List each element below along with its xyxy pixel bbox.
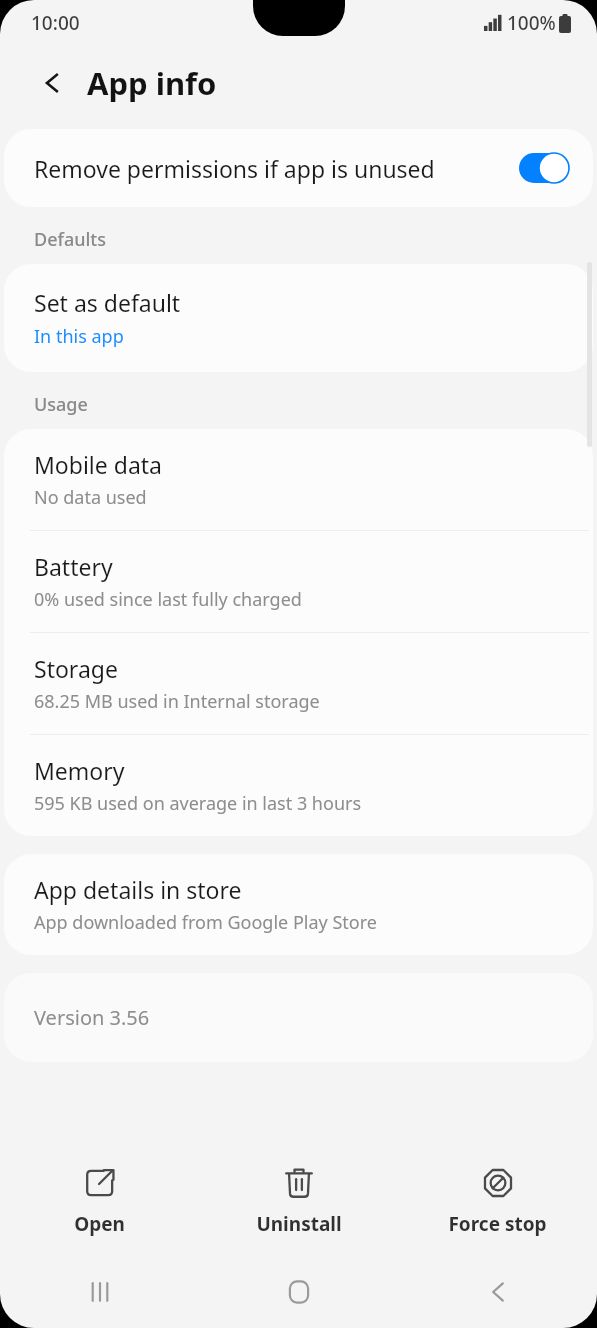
staticText: Battery [34, 551, 113, 582]
button[interactable]: Recent apps [0, 1256, 199, 1328]
button[interactable]: Storage [4, 633, 593, 734]
staticText: Memory [34, 755, 125, 786]
staticText: Defaults [34, 227, 106, 252]
button[interactable]: App details in store [4, 854, 593, 955]
staticText: 68.25 MB used in Internal storage [34, 689, 320, 714]
button[interactable]: Force stop [398, 1148, 597, 1256]
staticText: App downloaded from Google Play Store [34, 910, 377, 935]
button[interactable]: Home [199, 1256, 398, 1328]
staticText: 100% [507, 10, 556, 36]
staticText: Set as default [34, 287, 181, 318]
staticText: App info [87, 62, 217, 104]
button[interactable]: Back [30, 61, 74, 105]
button[interactable]: Uninstall [199, 1148, 398, 1256]
staticText: Open [74, 1211, 125, 1237]
staticText: Version 3.56 [34, 1004, 150, 1031]
button[interactable]: Back [398, 1256, 597, 1328]
staticText: Usage [34, 392, 88, 417]
button[interactable]: Memory [4, 735, 593, 836]
button[interactable]: Mobile data [4, 429, 593, 530]
staticText: No data used [34, 485, 147, 510]
button[interactable]: Open [0, 1148, 199, 1256]
button[interactable]: Version 3.56 [4, 973, 593, 1062]
staticText: 595 KB used on average in last 3 hours [34, 791, 362, 816]
staticText: 0% used since last fully charged [34, 587, 302, 612]
staticText: Storage [34, 653, 118, 684]
staticText: In this app [34, 324, 124, 349]
button[interactable]: Remove permissions if app is unused [4, 129, 593, 207]
staticText: Remove permissions if app is unused [34, 153, 499, 184]
staticText: Force stop [448, 1211, 547, 1237]
staticText: Uninstall [256, 1211, 342, 1237]
staticText: App details in store [34, 874, 242, 905]
staticText: Mobile data [34, 449, 162, 480]
button[interactable]: Set as default [4, 264, 593, 372]
staticText: 10:00 [31, 10, 80, 36]
button[interactable]: Battery [4, 531, 593, 632]
